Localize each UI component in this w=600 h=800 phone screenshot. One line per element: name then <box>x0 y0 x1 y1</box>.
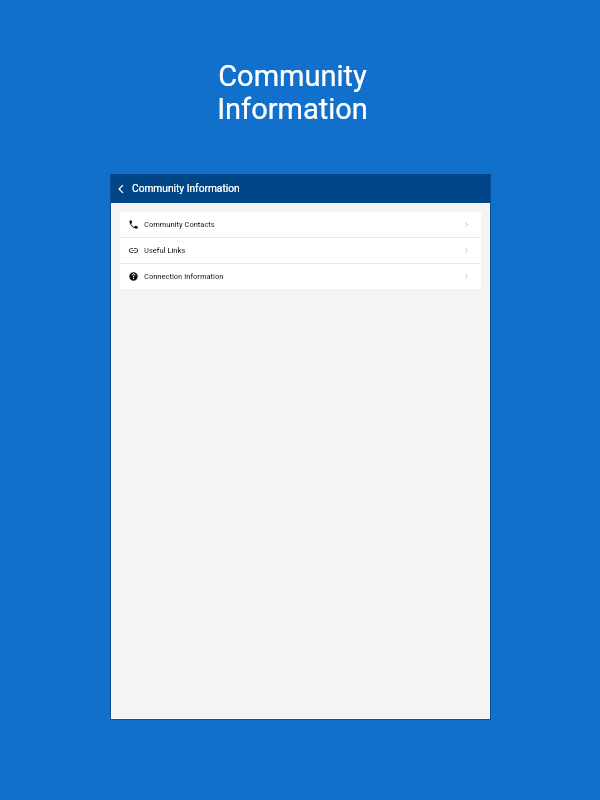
staticText: Connection Information <box>144 272 224 281</box>
button[interactable]: Useful Links <box>120 238 481 263</box>
button[interactable]: Connection Information <box>120 264 481 289</box>
staticText: Community Information <box>132 183 240 195</box>
button[interactable]: Community Contacts <box>120 212 481 237</box>
staticText: Community Information <box>217 59 368 126</box>
staticText: Community Contacts <box>144 220 215 229</box>
staticText: Useful Links <box>144 246 186 255</box>
button[interactable]: Back <box>112 180 129 197</box>
